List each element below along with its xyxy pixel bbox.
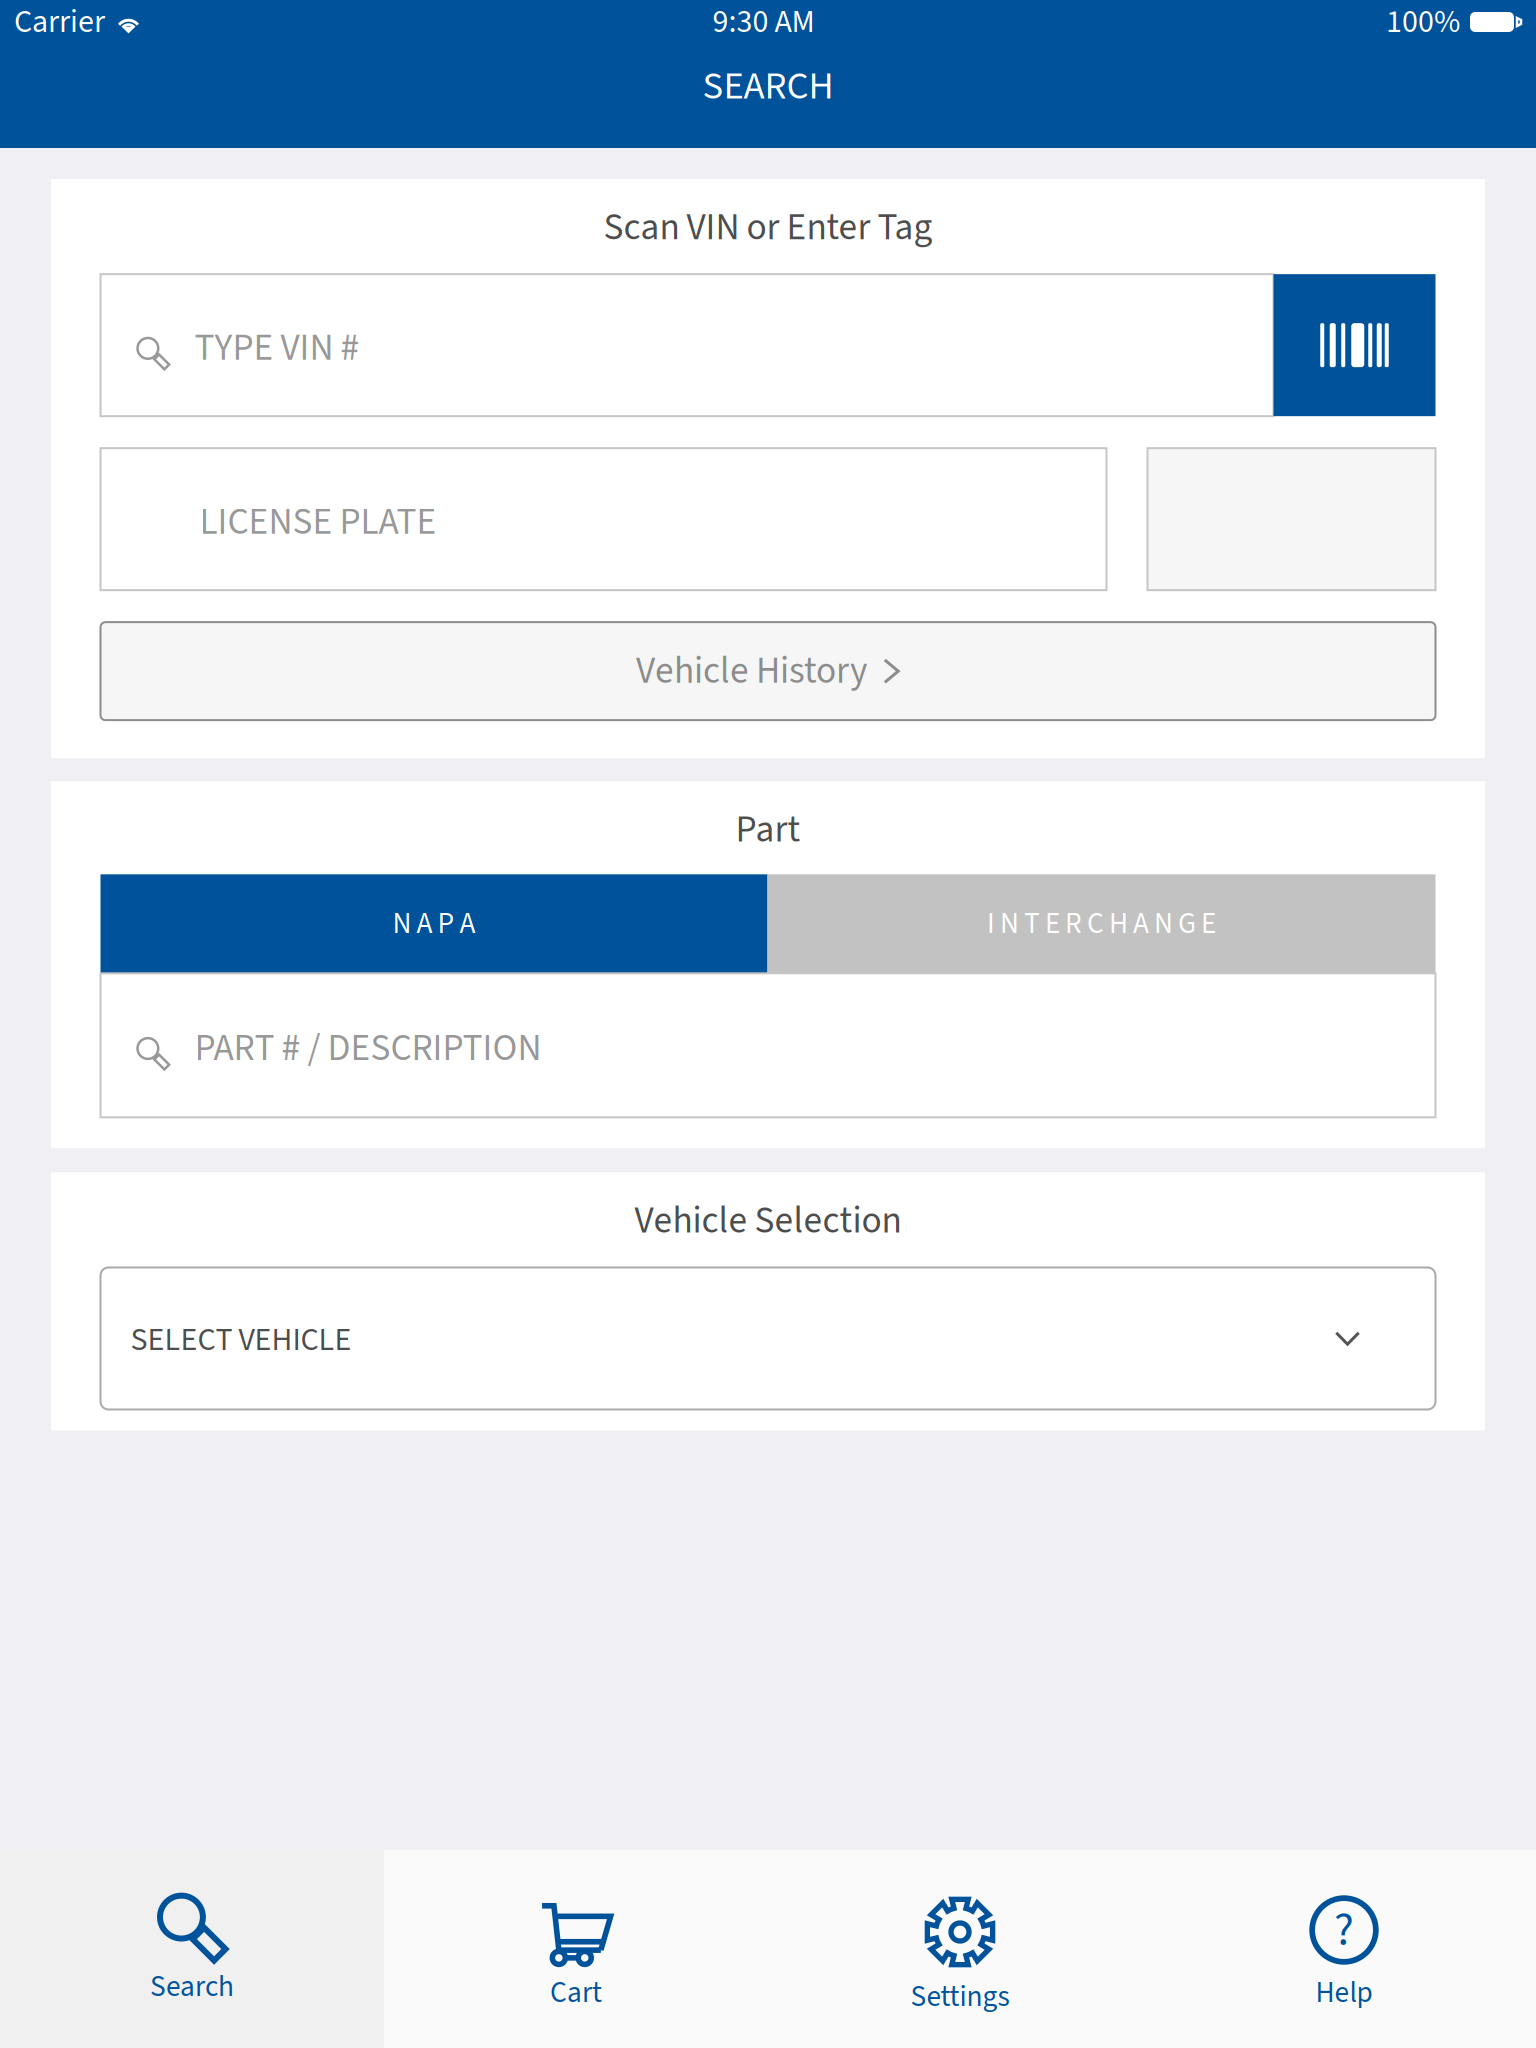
staticText: Settings	[910, 1976, 1009, 2018]
button[interactable]: Search license plate	[1147, 448, 1435, 590]
staticText: SELECT VEHICLE	[130, 1317, 351, 1363]
button[interactable]: Scan VIN barcode	[1273, 274, 1435, 416]
button[interactable]: N A P A	[100, 874, 767, 973]
button[interactable]: Vehicle History	[100, 622, 1435, 720]
staticText: Vehicle History	[636, 645, 867, 698]
staticText: 100%	[1386, 0, 1460, 45]
button[interactable]: Cart	[384, 1850, 768, 2048]
button[interactable]: LICENSE PLATE	[100, 448, 1106, 590]
button[interactable]: TYPE VIN #	[100, 274, 1273, 416]
staticText: TYPE VIN #	[194, 322, 359, 375]
button[interactable]: ?	[1152, 1850, 1536, 2048]
staticText: LICENSE PLATE	[199, 496, 436, 549]
staticText: ?	[1334, 1897, 1354, 1963]
button[interactable]: PART # / DESCRIPTION	[100, 973, 1435, 1117]
staticText: Help	[1315, 1972, 1372, 2014]
button[interactable]: SELECT VEHICLE	[100, 1267, 1435, 1409]
button[interactable]: Search	[0, 1850, 384, 2048]
staticText: Search	[150, 1966, 234, 2008]
staticText: SEARCH	[702, 59, 833, 114]
button[interactable]: Settings	[768, 1850, 1152, 2048]
staticText: Scan VIN or Enter Tag	[603, 201, 932, 254]
staticText: Vehicle Selection	[634, 1194, 901, 1247]
staticText: 9:30 AM	[712, 0, 814, 45]
staticText: I N T E R C H A N G E	[987, 903, 1216, 945]
staticText: Cart	[550, 1972, 602, 2014]
staticText: Part	[735, 803, 800, 856]
staticText: N A P A	[392, 903, 475, 945]
button[interactable]: I N T E R C H A N G E	[767, 874, 1435, 973]
staticText: Carrier	[14, 0, 105, 45]
staticText: PART # / DESCRIPTION	[194, 1022, 541, 1075]
